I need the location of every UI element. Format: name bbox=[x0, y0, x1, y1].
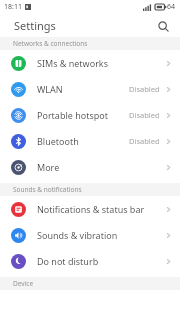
button[interactable]: WLAN bbox=[0, 76, 180, 102]
staticText: Sounds & vibration bbox=[37, 229, 118, 241]
button[interactable]: Notifications & status bar bbox=[0, 196, 180, 222]
staticText: 18:11 bbox=[4, 2, 22, 12]
staticText: Device bbox=[13, 279, 34, 288]
button[interactable]: Bluetooth bbox=[0, 128, 180, 154]
staticText: Settings bbox=[14, 18, 56, 33]
button[interactable]: Do not disturb bbox=[0, 248, 180, 274]
staticText: SIMs & networks bbox=[37, 57, 108, 69]
staticText: More bbox=[37, 161, 60, 173]
staticText: Notifications & status bar bbox=[37, 203, 145, 215]
staticText: Networks & connections bbox=[13, 39, 88, 48]
staticText: Portable hotspot bbox=[37, 109, 108, 121]
staticText: Sounds & notifications bbox=[13, 185, 82, 194]
button[interactable]: SIMs & networks bbox=[0, 50, 180, 76]
staticText: Bluetooth bbox=[37, 135, 79, 147]
button[interactable]: Search bbox=[154, 17, 172, 35]
staticText: 64 bbox=[167, 2, 176, 12]
staticText: Disabled bbox=[129, 110, 160, 120]
staticText: Disabled bbox=[129, 136, 160, 146]
button[interactable]: Sounds & vibration bbox=[0, 222, 180, 248]
button[interactable]: Portable hotspot bbox=[0, 102, 180, 128]
button[interactable]: More bbox=[0, 154, 180, 180]
staticText: Disabled bbox=[129, 84, 160, 94]
staticText: WLAN bbox=[37, 83, 63, 95]
staticText: Do not disturb bbox=[37, 255, 99, 267]
